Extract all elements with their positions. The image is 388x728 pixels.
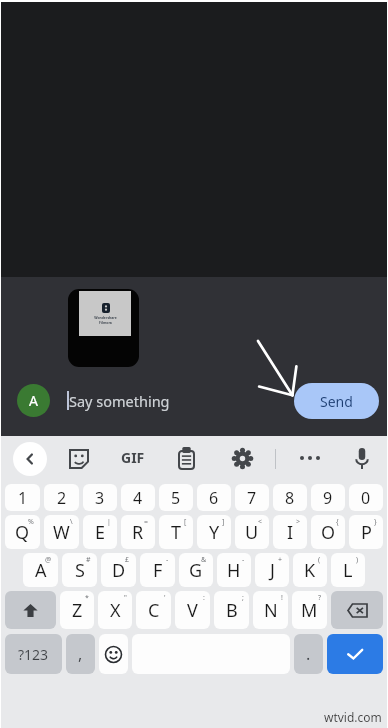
staticText: ! [281, 593, 283, 603]
staticText: & [201, 555, 207, 565]
button[interactable]: Q [5, 515, 40, 549]
button[interactable]: 8 [273, 484, 307, 511]
button[interactable]: I [273, 515, 307, 549]
staticText: % [28, 517, 34, 527]
staticText: - [242, 555, 245, 565]
button[interactable]: L [331, 553, 365, 587]
staticText: [ [184, 517, 187, 527]
button[interactable]: C [136, 591, 171, 629]
button[interactable]: R [121, 515, 155, 549]
staticText: 9 [323, 487, 333, 509]
staticText: J [270, 558, 275, 583]
button[interactable]: ?123 [5, 634, 62, 674]
staticText: E [95, 520, 106, 545]
staticText: # [86, 555, 91, 565]
staticText: V [187, 598, 198, 623]
button[interactable]: 3 [83, 484, 117, 511]
button[interactable]: N [253, 591, 288, 629]
staticText: " [124, 593, 127, 603]
button[interactable]: S [62, 553, 97, 587]
button[interactable]: D [101, 553, 136, 587]
button[interactable]: Settings [232, 448, 253, 469]
button[interactable]: . [294, 634, 323, 674]
button[interactable]: Voice input [353, 447, 371, 471]
button[interactable]: M [292, 591, 327, 629]
button[interactable]: 7 [235, 484, 269, 511]
button[interactable]: K [293, 553, 327, 587]
button[interactable]: More [298, 456, 322, 460]
staticText: { [336, 517, 339, 527]
button[interactable]: E [83, 515, 117, 549]
button[interactable]: J [255, 553, 289, 587]
staticText: | [107, 517, 111, 527]
button[interactable]: W [44, 515, 79, 549]
staticText: @ [45, 555, 52, 565]
staticText: < [258, 517, 263, 527]
button[interactable]: Send [294, 383, 379, 419]
staticText: W [53, 520, 70, 545]
button[interactable]: Back [13, 442, 47, 476]
staticText: I [287, 520, 294, 545]
button[interactable]: 1 [5, 484, 40, 511]
button[interactable]: G [179, 553, 213, 587]
staticText: ( [318, 555, 321, 565]
button[interactable]: Stickers [68, 448, 90, 470]
staticText: 0 [361, 487, 371, 509]
button[interactable]: 4 [121, 484, 155, 511]
staticText: - [166, 555, 169, 565]
staticText: R [132, 520, 144, 545]
button[interactable]: 6 [197, 484, 231, 511]
button[interactable]: Account [17, 384, 50, 417]
button[interactable]: Shift [5, 591, 56, 629]
button[interactable]: Emoji [99, 634, 128, 674]
staticText: 3 [95, 487, 105, 509]
staticText: + [278, 555, 283, 565]
button[interactable]: F [140, 553, 175, 587]
button[interactable]: U [235, 515, 269, 549]
staticText: 6 [209, 487, 219, 509]
button[interactable]: V [175, 591, 210, 629]
staticText: \ [70, 517, 73, 527]
staticText: T [171, 520, 182, 545]
button[interactable]: 5 [159, 484, 193, 511]
button[interactable]: Backspace [331, 591, 383, 629]
staticText: Filmora [99, 320, 112, 325]
staticText: N [264, 598, 278, 623]
staticText: ; [242, 593, 244, 603]
button[interactable]: 2 [44, 484, 79, 511]
button[interactable]: Y [197, 515, 231, 549]
button[interactable]: B [214, 591, 249, 629]
staticText: = [144, 517, 149, 527]
button[interactable]: H [217, 553, 251, 587]
staticText: wtvid.com [324, 709, 382, 725]
button[interactable]: P [349, 515, 383, 549]
staticText: Q [15, 520, 30, 545]
staticText: 5 [171, 487, 181, 509]
staticText: O [321, 520, 336, 545]
staticText: H [227, 558, 241, 583]
button[interactable]: 0 [349, 484, 383, 511]
button[interactable]: Z [60, 591, 94, 629]
button[interactable]: Say something [67, 378, 294, 423]
button[interactable]: , [66, 634, 95, 674]
button[interactable]: 9 [311, 484, 345, 511]
staticText: ?123 [18, 645, 49, 664]
button[interactable]: T [159, 515, 193, 549]
button[interactable]: O [311, 515, 345, 549]
staticText: : [203, 593, 205, 603]
staticText: B [226, 598, 238, 623]
staticText: U [245, 520, 259, 545]
button[interactable]: A [23, 553, 58, 587]
staticText: 8 [285, 487, 295, 509]
button[interactable]: Clipboard [176, 447, 197, 471]
button[interactable]: GIF [121, 448, 145, 467]
staticText: GIF [121, 448, 145, 467]
button[interactable]: X [98, 591, 132, 629]
staticText: Say something [69, 391, 170, 411]
staticText: D [112, 558, 126, 583]
staticText: L [343, 558, 353, 583]
staticText: Wondershare [94, 315, 117, 320]
button[interactable]: Video thumbnail [68, 289, 139, 367]
button[interactable]: Enter [327, 634, 383, 674]
